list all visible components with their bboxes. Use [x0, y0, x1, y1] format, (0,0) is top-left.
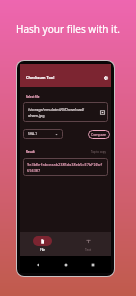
staticText: Text — [85, 248, 92, 252]
staticText: Compare — [91, 132, 107, 137]
button[interactable]: Back — [34, 261, 42, 269]
button[interactable]: Settings — [102, 74, 110, 82]
button[interactable]: SHA-1 — [28, 129, 58, 139]
button[interactable]: Home — [62, 261, 70, 269]
button[interactable]: Recent apps — [89, 261, 97, 269]
staticText: File — [40, 248, 46, 252]
button[interactable]: /storage/emulated/0/Download/ ohem.jpg — [28, 102, 106, 122]
staticText: Tap to copy — [91, 150, 106, 154]
staticText: Checksum Tool — [26, 75, 55, 80]
staticText: SHA-1 — [28, 132, 37, 136]
button[interactable]: Text — [65, 232, 111, 256]
button[interactable]: Browse files — [98, 108, 106, 116]
button[interactable]: 9e3b8efabceaab2385da38eb5cE7bF10af694387 — [23, 158, 108, 176]
staticText: Result — [26, 150, 35, 154]
button[interactable]: Compare — [88, 130, 110, 139]
staticText: /storage/emulated/0/Download/ ohem.jpg — [28, 107, 98, 118]
staticText: 9e3b8efabceaab2385da38eb5cE7bF10af694387 — [27, 162, 104, 173]
staticText: Select file — [26, 95, 40, 99]
staticText: Hash your files with it. — [0, 22, 136, 36]
button[interactable]: File — [20, 232, 65, 256]
